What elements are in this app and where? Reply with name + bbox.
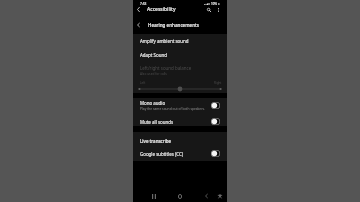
button[interactable]: Mute all sounds — [133, 115, 227, 128]
button[interactable]: Search — [204, 4, 213, 15]
button[interactable]: More options — [213, 4, 223, 15]
button[interactable]: Toggle — [211, 102, 220, 109]
staticText: Also used for calls — [140, 72, 167, 76]
staticText: Adapt Sound — [140, 52, 167, 58]
staticText: Mono audio — [140, 100, 166, 106]
button[interactable]: Navigate up — [133, 4, 144, 15]
button[interactable]: Accessibility — [213, 190, 227, 202]
staticText: Amplify ambient sound — [140, 38, 189, 44]
staticText: Mute all sounds — [140, 119, 174, 125]
staticText: Accessibility — [147, 6, 176, 13]
staticText: Left — [140, 81, 146, 85]
button[interactable]: Live transcribe — [133, 135, 227, 146]
staticText: Play the same sound out of both speakers… — [140, 107, 205, 111]
button[interactable]: Toggle — [211, 118, 220, 125]
button[interactable]: Adapt Sound — [133, 49, 227, 60]
button[interactable]: Home — [171, 190, 189, 202]
button[interactable]: Navigate up — [133, 19, 144, 31]
button[interactable]: Amplify ambient sound — [133, 35, 227, 46]
staticText: Hearing enhancements — [148, 22, 199, 28]
button[interactable]: Back — [197, 190, 215, 202]
button[interactable]: Recent apps — [145, 190, 163, 202]
button[interactable]: Sound balance slider — [133, 85, 227, 93]
button[interactable]: Google subtitles (CC) — [133, 147, 227, 160]
button[interactable]: Mono audio — [133, 99, 227, 112]
staticText: Google subtitles (CC) — [140, 151, 184, 157]
staticText: Left/right sound balance — [140, 65, 192, 71]
button[interactable]: Toggle — [211, 150, 220, 157]
staticText: Live transcribe — [140, 138, 172, 144]
staticText: 7:53 — [140, 2, 147, 6]
staticText: 10% — [211, 2, 217, 6]
staticText: Right — [214, 81, 222, 85]
